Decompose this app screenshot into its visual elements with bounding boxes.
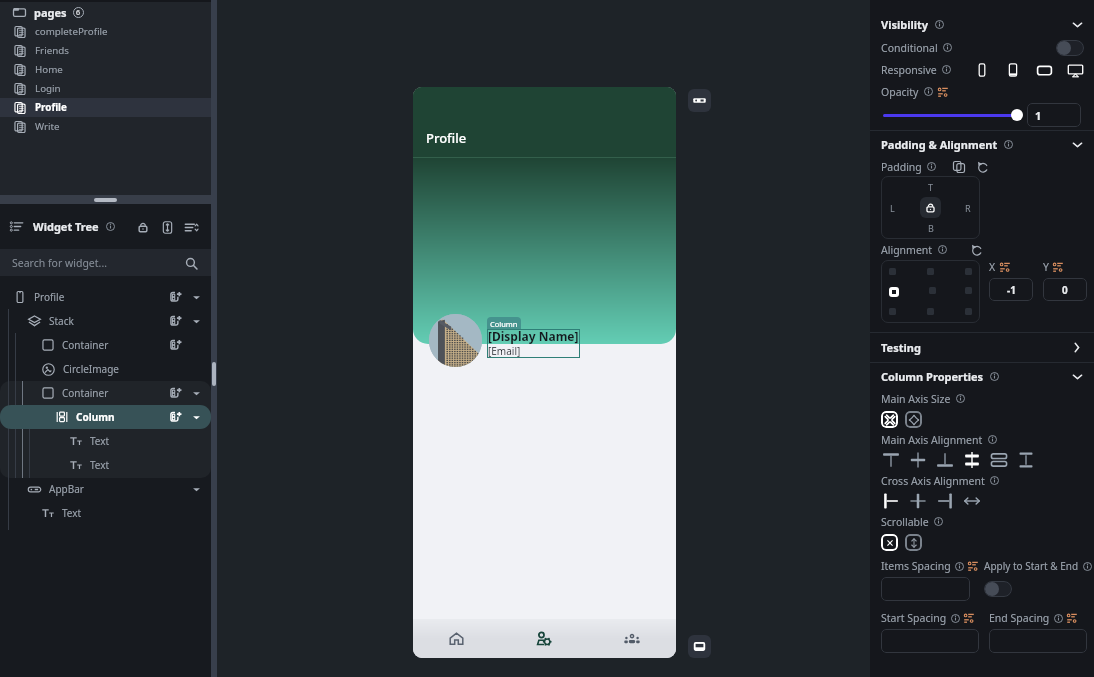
button[interactable]: AppBar <box>0 477 211 501</box>
button[interactable]: Text <box>0 501 211 525</box>
button[interactable]: pages <box>0 3 211 22</box>
staticText: completeProfile <box>35 25 108 38</box>
staticText: R <box>965 202 971 214</box>
button[interactable]: -1 <box>989 278 1033 301</box>
button[interactable]: Home <box>0 60 211 79</box>
button[interactable]: Align option <box>927 308 934 315</box>
staticText: Login <box>35 82 61 95</box>
staticText: Opacity <box>881 85 919 99</box>
staticText: CircleImage <box>63 362 119 376</box>
staticText: Column Properties <box>881 369 984 384</box>
button[interactable]: Profile settings <box>500 619 588 658</box>
button[interactable] <box>989 629 1087 653</box>
button[interactable]: Testing <box>870 333 1094 362</box>
staticText: Main Axis Size <box>881 392 951 406</box>
button[interactable]: Container <box>0 381 211 405</box>
button[interactable] <box>881 577 970 601</box>
button[interactable]: Align center left <box>889 287 899 297</box>
staticText: Widget Tree <box>33 219 99 234</box>
button[interactable]: Tablet layout <box>1003 60 1023 80</box>
staticText: Friends <box>35 44 69 57</box>
button[interactable]: Align start <box>877 449 904 471</box>
staticText: Profile <box>34 290 65 304</box>
staticText: Search for widget... <box>12 256 108 270</box>
button[interactable]: Cross start <box>877 490 904 512</box>
staticText: Conditional <box>881 41 938 55</box>
button[interactable]: Stack <box>0 309 211 333</box>
staticText: T <box>928 181 934 193</box>
button[interactable]: Option <box>905 534 922 551</box>
button[interactable]: Cross center <box>904 490 931 512</box>
button[interactable]: Column Properties <box>870 363 1094 389</box>
button[interactable]: Profile <box>0 285 211 309</box>
button[interactable]: Toggle <box>984 581 1012 597</box>
button[interactable]: Friends <box>0 41 211 60</box>
button[interactable]: Toggle <box>1056 40 1084 56</box>
button[interactable]: Cross stretch <box>958 490 985 512</box>
button[interactable]: Write <box>0 117 211 136</box>
button[interactable] <box>881 629 979 653</box>
staticText: Padding & Alignment <box>881 137 998 152</box>
button[interactable]: Login <box>0 79 211 98</box>
staticText: Items Spacing <box>881 559 951 573</box>
staticText: Testing <box>881 340 921 355</box>
button[interactable]: Option <box>881 534 898 551</box>
button[interactable]: Column <box>0 405 211 429</box>
staticText: Home <box>35 63 63 76</box>
staticText: 6 <box>76 8 81 18</box>
button[interactable]: Profile <box>0 98 211 117</box>
button[interactable]: Container <box>0 333 211 357</box>
button[interactable]: Reset alignment <box>970 243 984 257</box>
button[interactable]: Align option <box>889 308 896 315</box>
button[interactable]: Desktop layout <box>1065 60 1085 80</box>
button[interactable]: Align end <box>931 449 958 471</box>
staticText: Write <box>35 120 60 133</box>
button[interactable]: Search for widget... <box>0 249 211 276</box>
button[interactable]: Lock padding <box>920 197 941 218</box>
button[interactable]: Option <box>905 411 922 428</box>
button[interactable]: Padding & Alignment <box>870 131 1094 157</box>
button[interactable]: App bar settings <box>688 89 711 112</box>
button[interactable]: Home <box>413 619 500 658</box>
button[interactable]: Space between <box>958 449 985 471</box>
staticText: -1 <box>1007 283 1016 297</box>
button[interactable]: CircleImage <box>0 357 211 381</box>
button[interactable]: Align option <box>965 268 972 275</box>
button[interactable]: Copy padding <box>952 160 966 174</box>
button[interactable]: Space evenly <box>1012 449 1039 471</box>
button[interactable]: completeProfile <box>0 22 211 41</box>
button[interactable]: Align option <box>965 287 972 294</box>
staticText: Cross Axis Alignment <box>881 474 985 488</box>
button[interactable]: Landscape layout <box>1034 60 1054 80</box>
staticText: Container <box>62 386 109 400</box>
staticText: Text <box>90 434 110 448</box>
button[interactable]: Lock widget tree <box>134 218 152 236</box>
staticText: Y <box>1043 260 1049 274</box>
button[interactable]: Visibility <box>870 11 1094 37</box>
button[interactable]: 0 <box>1043 278 1087 301</box>
staticText: Scrollable <box>881 515 929 529</box>
staticText: B <box>928 222 934 234</box>
staticText: [Display Name] <box>488 328 579 344</box>
button[interactable]: 1 <box>1027 103 1081 127</box>
staticText: Visibility <box>881 17 929 32</box>
button[interactable]: Align option <box>929 287 936 294</box>
staticText: pages <box>34 5 67 20</box>
staticText: L <box>890 202 895 214</box>
staticText: End Spacing <box>989 611 1050 625</box>
button[interactable]: Sort widgets <box>182 218 200 236</box>
button[interactable]: Space around <box>985 449 1012 471</box>
button[interactable]: Align option <box>889 268 896 275</box>
button[interactable]: Text <box>0 429 211 453</box>
button[interactable]: Align option <box>927 268 934 275</box>
button[interactable]: Align option <box>965 308 972 315</box>
button[interactable]: Reset padding <box>976 160 990 174</box>
button[interactable]: Bottom bar settings <box>688 635 711 658</box>
button[interactable]: Cross end <box>931 490 958 512</box>
button[interactable]: Option <box>881 411 898 428</box>
button[interactable]: Expand all <box>158 218 176 236</box>
button[interactable]: Phone layout <box>972 60 992 80</box>
button[interactable]: Align center <box>904 449 931 471</box>
button[interactable]: Friends <box>588 619 676 658</box>
button[interactable]: Text <box>0 453 211 477</box>
